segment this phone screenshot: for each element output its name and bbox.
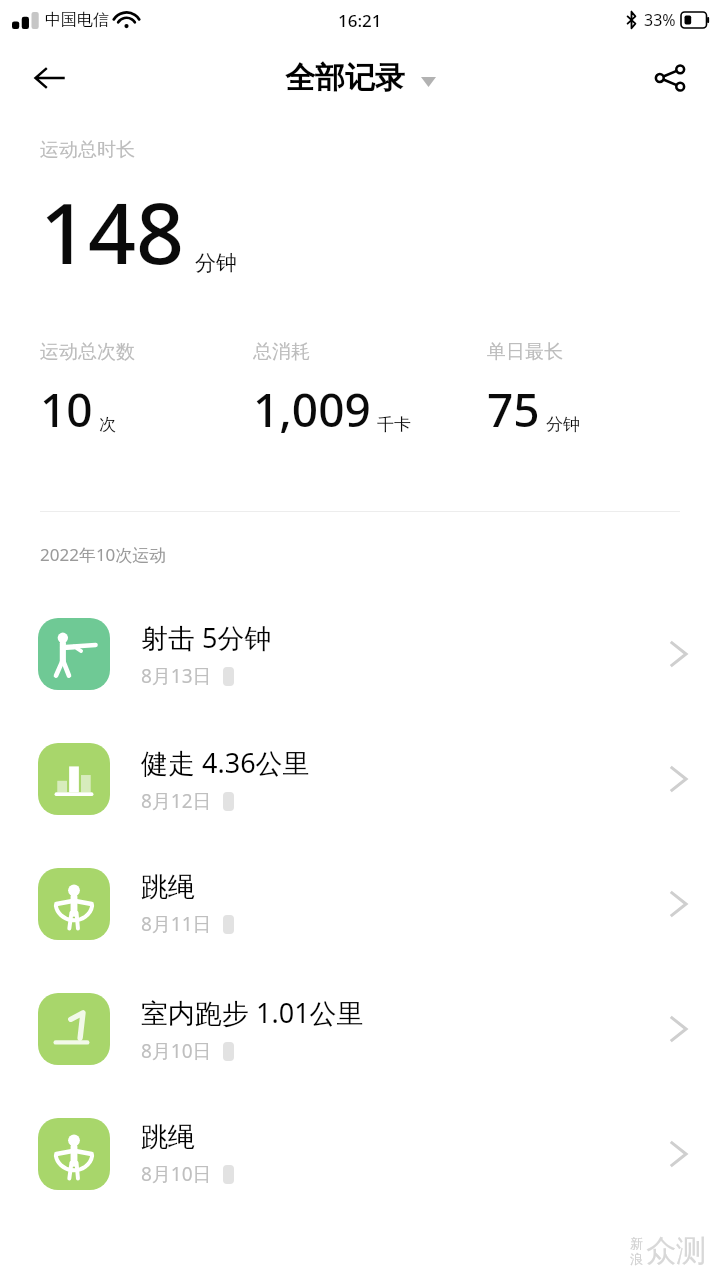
staticText: 8月12日 xyxy=(141,788,212,814)
staticText: 跳绳 xyxy=(141,870,195,904)
staticText: 总消耗 xyxy=(253,340,310,364)
button[interactable]: Back xyxy=(22,50,78,106)
staticText: 运动总时长 xyxy=(40,138,135,162)
button[interactable]: 健走 4.36公里 xyxy=(0,716,720,841)
staticText: 跳绳 xyxy=(141,1120,195,1154)
staticText: 148 xyxy=(40,174,185,288)
staticText: 运动总次数 xyxy=(40,340,135,364)
staticText: 8月13日 xyxy=(141,663,212,689)
staticText: 次 xyxy=(99,414,116,435)
staticText: 千卡 xyxy=(377,414,411,435)
staticText: 健走 4.36公里 xyxy=(141,744,310,781)
button[interactable]: 跳绳 xyxy=(0,841,720,966)
staticText: 室内跑步 1.01公里 xyxy=(141,994,364,1031)
staticText: 射击 5分钟 xyxy=(141,619,272,656)
staticText: 浪 xyxy=(630,1251,643,1267)
staticText: 中国电信 xyxy=(45,10,109,30)
button[interactable]: 跳绳 xyxy=(0,1091,720,1216)
staticText: 8月10日 xyxy=(141,1038,212,1064)
staticText: 10 xyxy=(40,378,93,441)
staticText: 单日最长 xyxy=(487,340,563,364)
button[interactable]: 全部记录 xyxy=(285,59,436,97)
staticText: 1,009 xyxy=(253,378,371,441)
staticText: 33% xyxy=(644,9,676,31)
button[interactable]: 射击 5分钟 xyxy=(0,591,720,716)
staticText: 分钟 xyxy=(195,250,237,276)
staticText: 新 xyxy=(630,1235,643,1251)
staticText: 75 xyxy=(487,378,540,441)
staticText: 2022年10次运动 xyxy=(40,543,167,566)
button[interactable]: Share xyxy=(642,50,698,106)
staticText: 8月11日 xyxy=(141,911,212,937)
staticText: 8月10日 xyxy=(141,1161,212,1187)
button[interactable]: 室内跑步 1.01公里 xyxy=(0,966,720,1091)
staticText: 分钟 xyxy=(546,414,580,435)
staticText: 众测 xyxy=(646,1232,706,1270)
staticText: 16:21 xyxy=(338,9,382,32)
staticText: 全部记录 xyxy=(285,59,405,97)
